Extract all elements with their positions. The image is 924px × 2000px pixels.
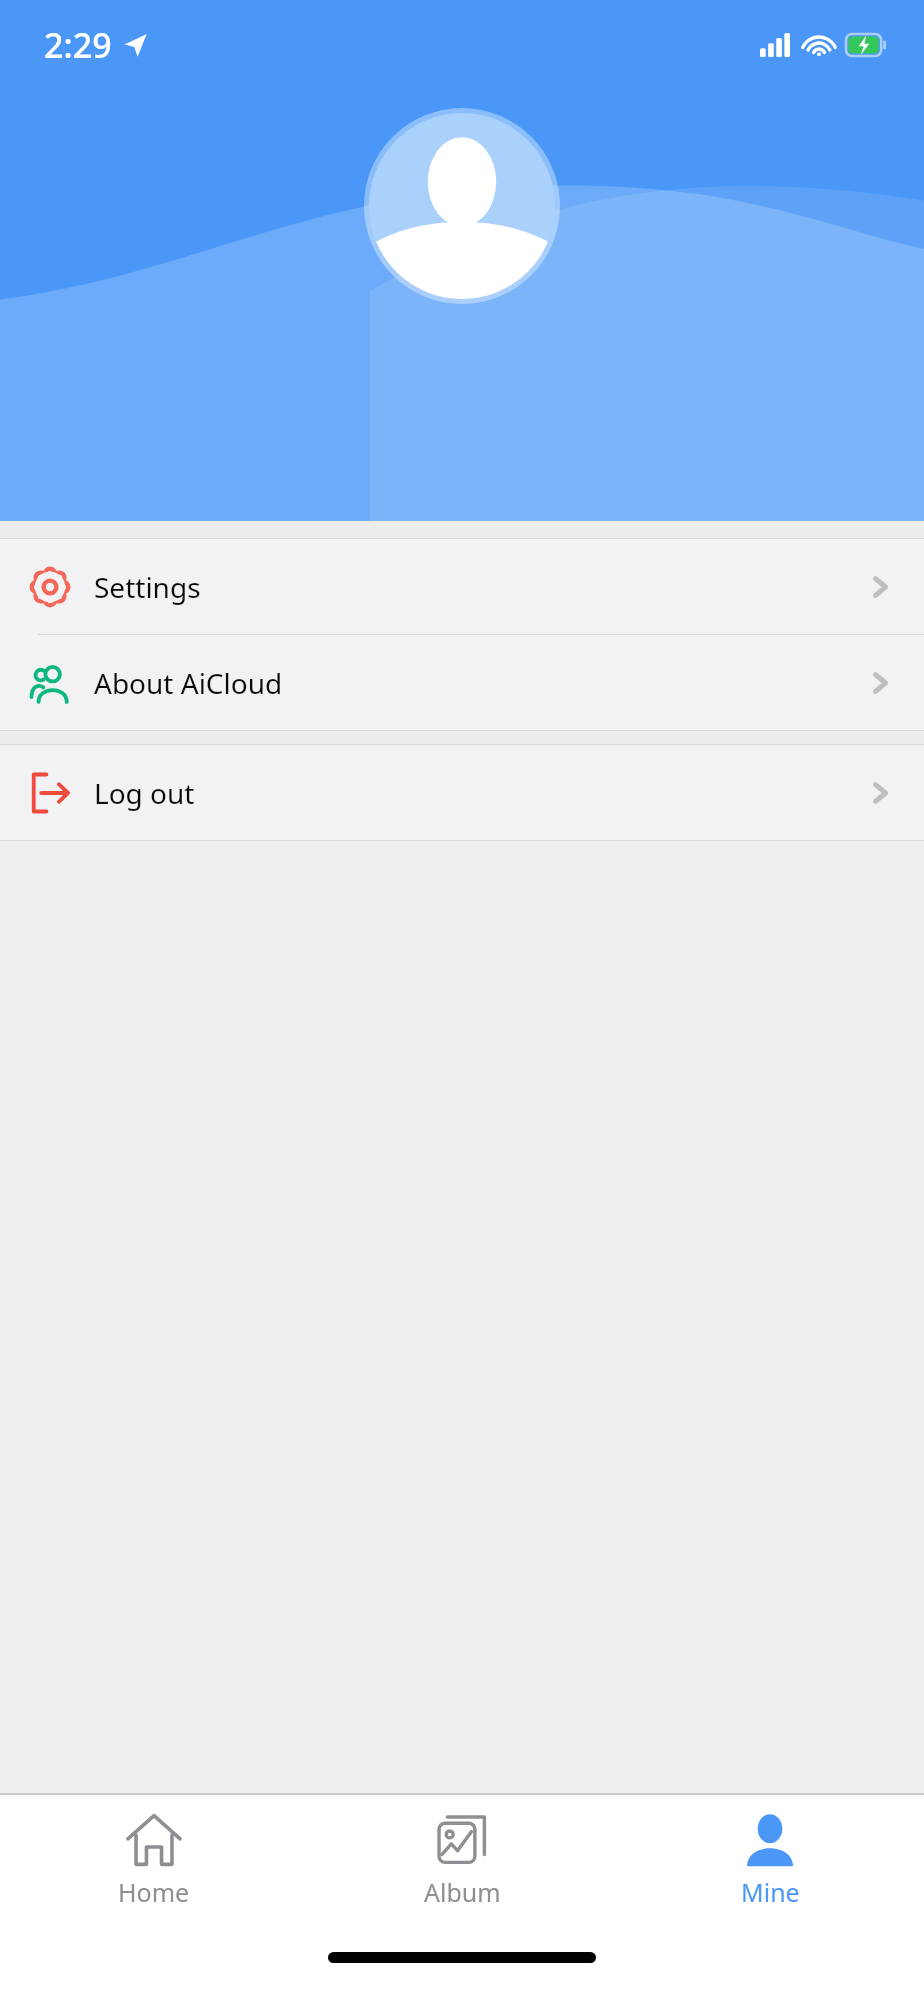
other: Album: [434, 1812, 490, 1868]
other: Home: [125, 1811, 183, 1869]
button[interactable]: About AiCloud: [0, 635, 924, 730]
button[interactable]: Settings: [0, 539, 924, 634]
staticText: 2:29: [44, 22, 112, 68]
button[interactable]: Home: [0, 1795, 308, 1930]
other: Mine: [742, 1812, 798, 1868]
button[interactable]: Mine: [616, 1795, 924, 1930]
staticText: About AiCloud: [94, 664, 283, 702]
staticText: Settings: [94, 568, 201, 606]
staticText: Home: [118, 1875, 190, 1909]
staticText: Log out: [94, 774, 195, 812]
button[interactable]: Log out: [0, 745, 924, 840]
staticText: Mine: [741, 1875, 800, 1909]
button[interactable]: Album: [308, 1795, 616, 1930]
staticText: Album: [424, 1875, 501, 1909]
